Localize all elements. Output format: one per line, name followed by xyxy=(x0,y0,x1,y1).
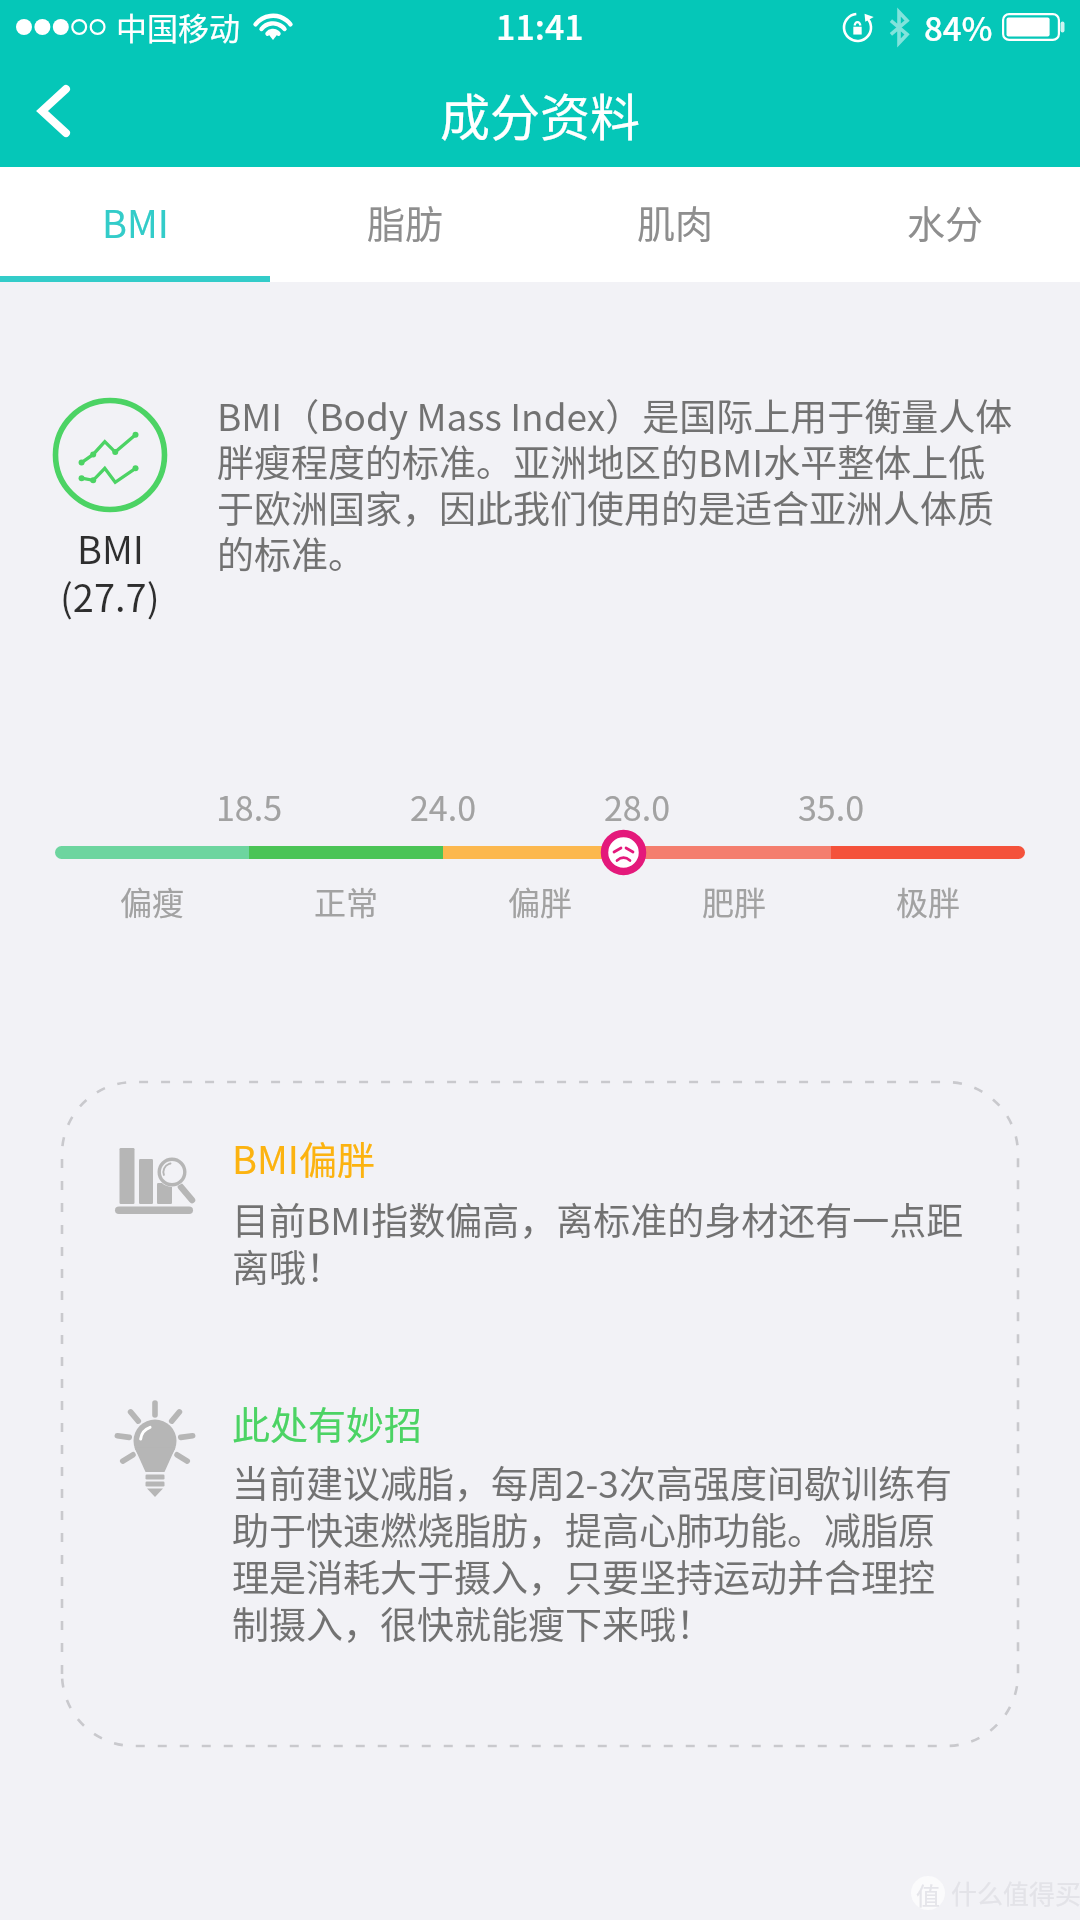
button[interactable]: 水分 xyxy=(810,167,1080,276)
staticText: 24.0 xyxy=(410,782,477,831)
staticText: 水分 xyxy=(907,194,984,249)
staticText: 此处有妙招 xyxy=(232,1395,423,1450)
staticText: 脂肪 xyxy=(367,194,444,249)
staticText: BMI xyxy=(77,520,144,575)
staticText: 中国移动 xyxy=(116,4,240,49)
staticText: 偏瘦 xyxy=(120,878,185,924)
staticText: 极胖 xyxy=(896,878,961,924)
staticText: 当前建议减脂，每周2-3次高强度间歇训练有助于快速燃烧脂肪，提高心肺功能。减脂原… xyxy=(232,1455,962,1649)
button[interactable]: 脂肪 xyxy=(270,167,540,276)
staticText: 偏胖 xyxy=(508,878,573,924)
staticText: 目前BMI指数偏高，离标准的身材还有一点距离哦！ xyxy=(232,1192,972,1292)
staticText: 成分资料 xyxy=(440,78,640,150)
staticText: 值 xyxy=(916,1877,940,1909)
button[interactable]: Back xyxy=(0,55,108,167)
staticText: 28.0 xyxy=(604,782,671,831)
staticText: BMI偏胖 xyxy=(232,1130,375,1185)
staticText: BMI xyxy=(102,194,169,249)
staticText: 18.5 xyxy=(216,782,283,831)
staticText: (27.7) xyxy=(60,568,160,623)
staticText: 肥胖 xyxy=(702,878,767,924)
other: Rotation lock xyxy=(842,12,873,43)
staticText: 肌肉 xyxy=(637,194,714,249)
staticText: BMI（Body Mass Index）是国际上用于衡量人体胖瘦程度的标准。亚洲… xyxy=(217,388,1020,580)
staticText: 正常 xyxy=(314,878,379,924)
button[interactable]: 肌肉 xyxy=(540,167,810,276)
staticText: 11:41 xyxy=(496,1,584,50)
button[interactable]: BMI xyxy=(0,167,270,276)
staticText: 35.0 xyxy=(798,782,865,831)
staticText: 84% xyxy=(924,3,993,51)
staticText: 什么值得买 xyxy=(951,1874,1080,1912)
